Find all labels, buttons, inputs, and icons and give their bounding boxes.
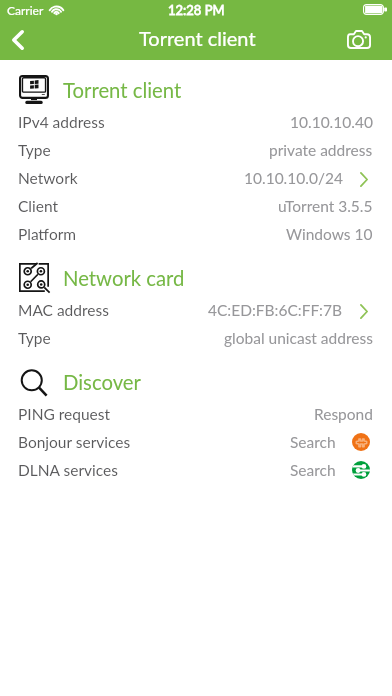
staticText: uTorrent 3.5.5 [278,197,373,216]
button[interactable]: Bonjour services [0,428,392,456]
button[interactable]: DLNA [352,461,370,479]
staticText: Bonjour services [18,433,131,452]
staticText: Search [290,433,336,452]
staticText: Network [18,169,78,188]
staticText: 10.10.10.0/24 [244,169,343,188]
button[interactable]: Type [0,324,392,352]
staticText: global unicast address [224,329,373,348]
button[interactable]: Network [0,164,392,192]
staticText: Search [290,461,336,480]
staticText: 10.10.10.40 [290,113,373,132]
staticText: private address [269,141,373,160]
button[interactable]: Client [0,192,392,220]
staticText: 12:28 PM [168,2,225,18]
button[interactable]: Bonjour [352,433,370,451]
staticText: Platform [18,225,77,244]
staticText: IPv4 address [18,113,105,132]
staticText: 4C:ED:FB:6C:FF:7B [208,301,343,320]
staticText: Torrent client [139,26,256,50]
button[interactable]: PING request [0,400,392,428]
staticText: Carrier [7,3,44,17]
staticText: Type [18,141,51,160]
button[interactable]: Back [0,20,44,60]
button[interactable]: Type [0,136,392,164]
staticText: MAC address [18,301,109,320]
button[interactable]: MAC address [0,296,392,324]
staticText: Respond [314,405,373,424]
staticText: DLNA services [18,461,118,480]
button[interactable]: Platform [0,220,392,248]
staticText: Client [18,197,59,216]
button[interactable]: DLNA services [0,456,392,484]
button[interactable]: IPv4 address [0,108,392,136]
staticText: PING request [18,405,111,424]
staticText: Discover [63,370,141,394]
staticText: Torrent client [63,78,182,102]
staticText: Network card [63,266,185,290]
button[interactable]: Camera [348,20,392,60]
staticText: Type [18,329,51,348]
staticText: Windows 10 [286,225,373,244]
